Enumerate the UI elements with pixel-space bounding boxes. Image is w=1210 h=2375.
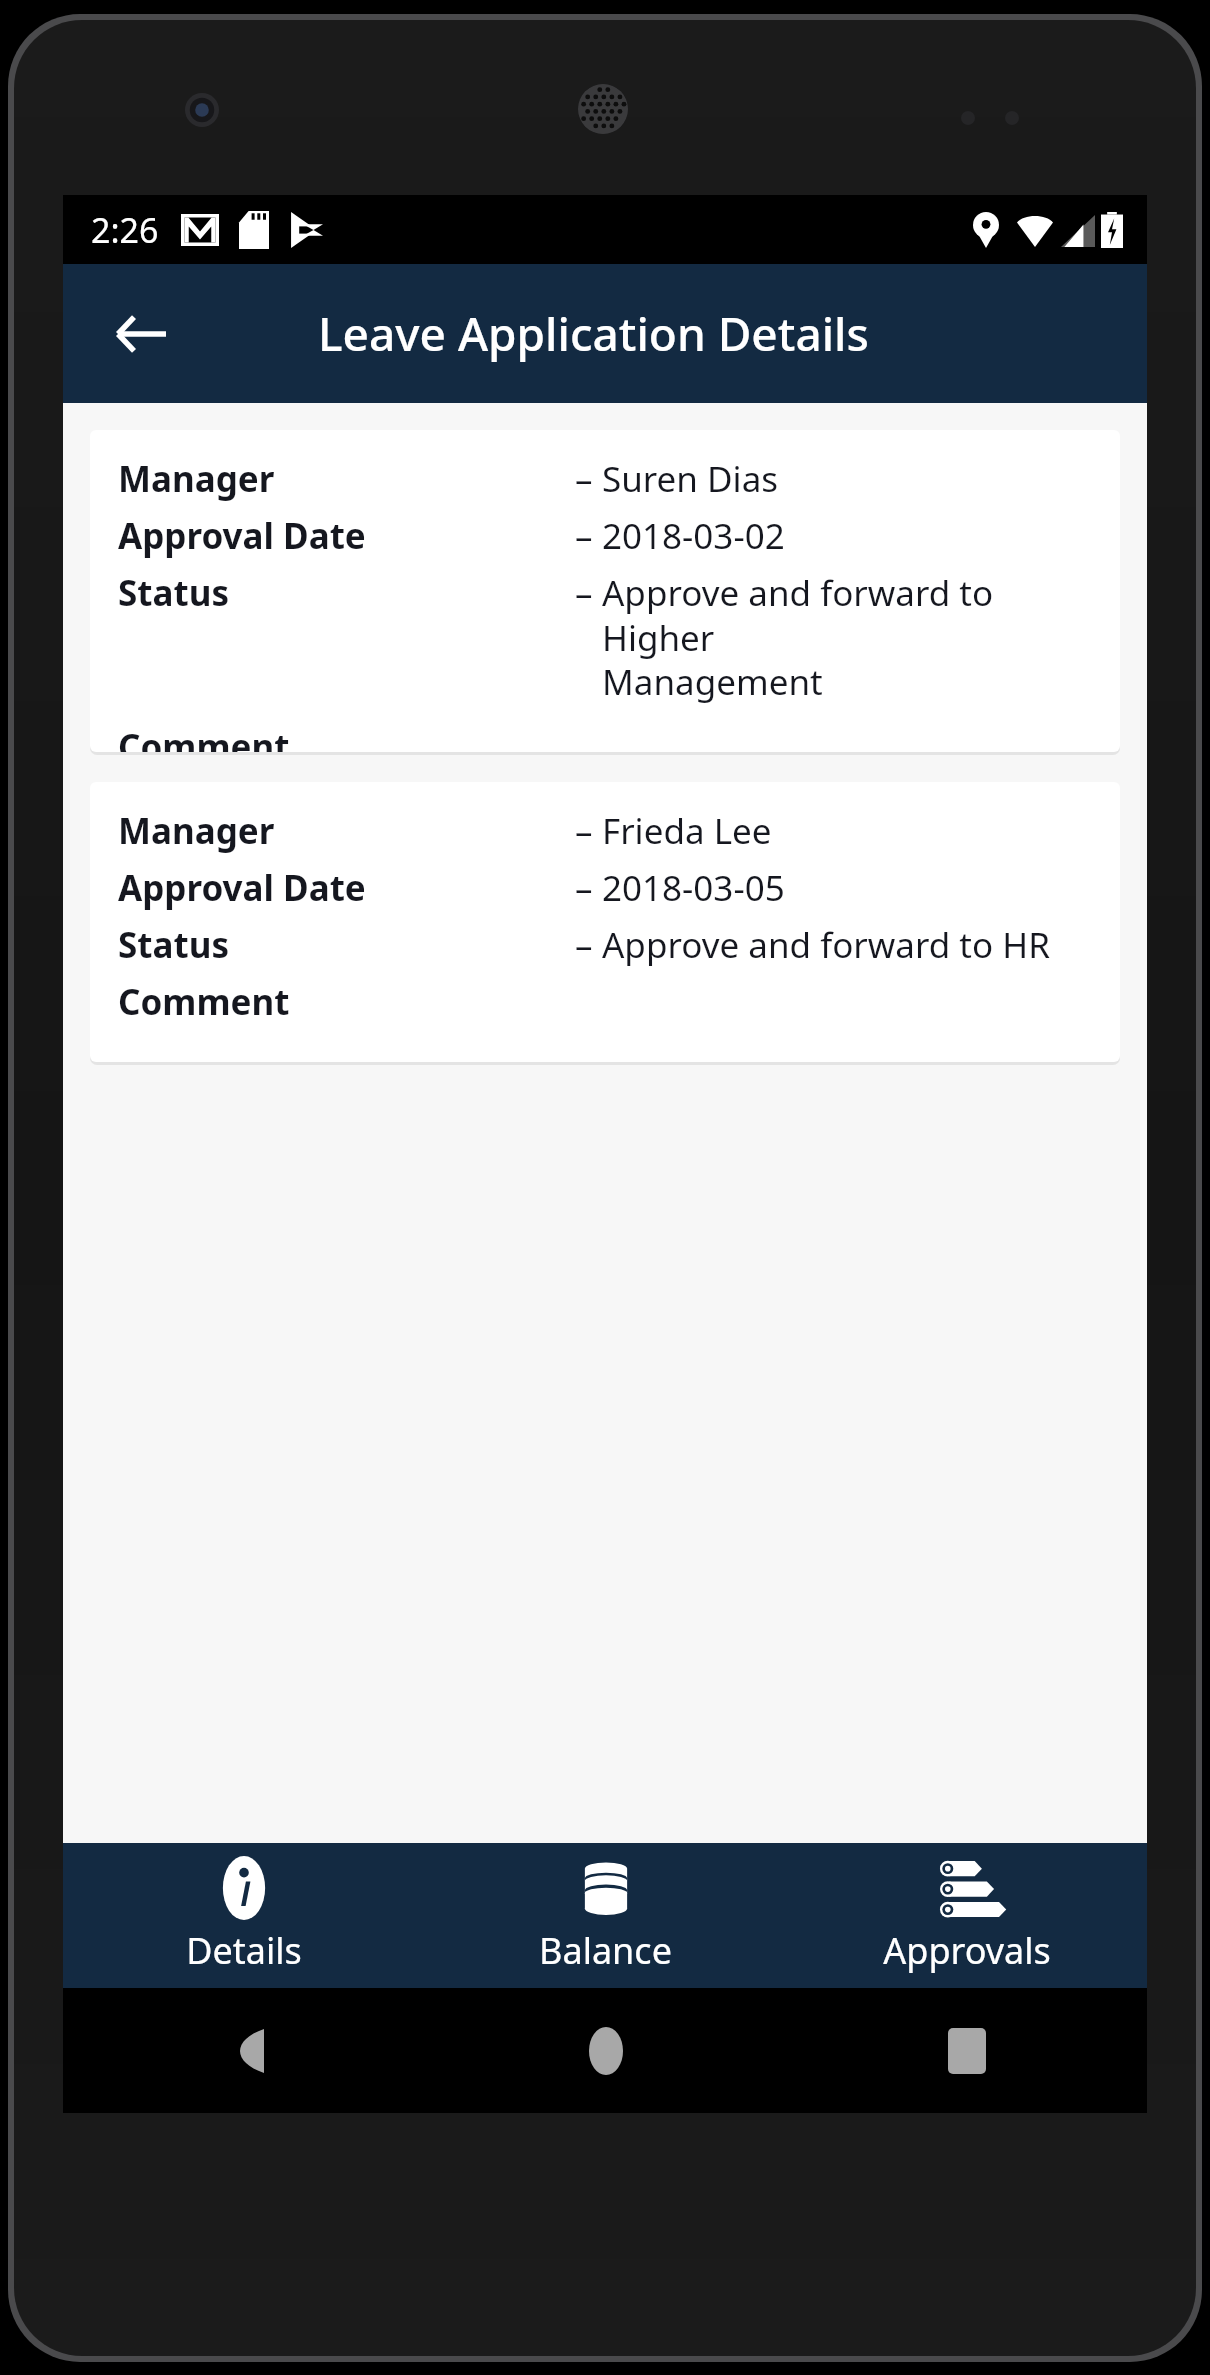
button[interactable]: Recent apps: [786, 1988, 1147, 2113]
staticText: Suren Dias: [602, 455, 779, 503]
staticText: Leave Application Details: [318, 302, 869, 365]
staticText: –: [575, 512, 593, 560]
staticText: Approve and forward to Higher Management: [602, 569, 1100, 705]
staticText: Details: [186, 1926, 302, 1975]
staticText: Approval Date: [118, 864, 575, 912]
staticText: Balance: [539, 1926, 672, 1975]
button[interactable]: Manager: [90, 782, 1120, 1062]
button[interactable]: Details: [63, 1843, 425, 1988]
staticText: Comment: [118, 723, 290, 752]
button[interactable]: Approvals: [786, 1843, 1147, 1988]
staticText: Status: [118, 569, 575, 617]
staticText: –: [575, 921, 593, 969]
button[interactable]: Home: [425, 1988, 786, 2113]
staticText: Manager: [118, 455, 575, 503]
staticText: –: [575, 864, 593, 912]
staticText: Approvals: [883, 1926, 1051, 1975]
staticText: –: [575, 569, 593, 617]
staticText: Approval Date: [118, 512, 575, 560]
staticText: –: [575, 455, 593, 503]
staticText: 2018-03-05: [602, 864, 785, 912]
staticText: –: [575, 807, 593, 855]
button[interactable]: Back: [63, 1988, 425, 2113]
button[interactable]: Balance: [425, 1843, 786, 1988]
staticText: Comment: [118, 978, 290, 1026]
staticText: Frieda Lee: [602, 807, 772, 855]
staticText: Manager: [118, 807, 575, 855]
button[interactable]: Back: [105, 298, 177, 370]
staticText: 2018-03-02: [602, 512, 785, 560]
staticText: Status: [118, 921, 575, 969]
button[interactable]: Manager: [90, 430, 1120, 752]
staticText: 2:26: [91, 207, 159, 253]
staticText: Approve and forward to HR: [602, 921, 1050, 969]
